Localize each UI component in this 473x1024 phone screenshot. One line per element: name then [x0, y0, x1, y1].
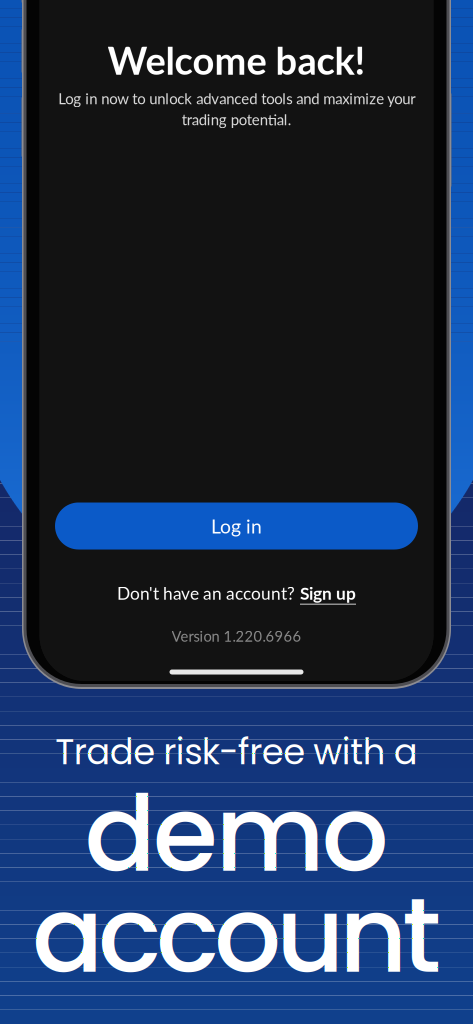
- staticText: account: [32, 861, 441, 1009]
- staticText: Don't have an account?: [117, 583, 295, 603]
- staticText: Trade risk-free with a: [55, 727, 418, 777]
- button[interactable]: Don't have an account?: [86, 579, 386, 607]
- staticText: Sign up: [300, 583, 356, 603]
- staticText: Log in now to unlock advanced tools and …: [58, 90, 415, 128]
- staticText: Welcome back!: [107, 37, 365, 83]
- staticText: Version 1.220.6966: [171, 627, 301, 645]
- staticText: Log in: [211, 514, 262, 538]
- staticText: demo: [84, 760, 389, 908]
- button[interactable]: Log in: [55, 502, 418, 549]
